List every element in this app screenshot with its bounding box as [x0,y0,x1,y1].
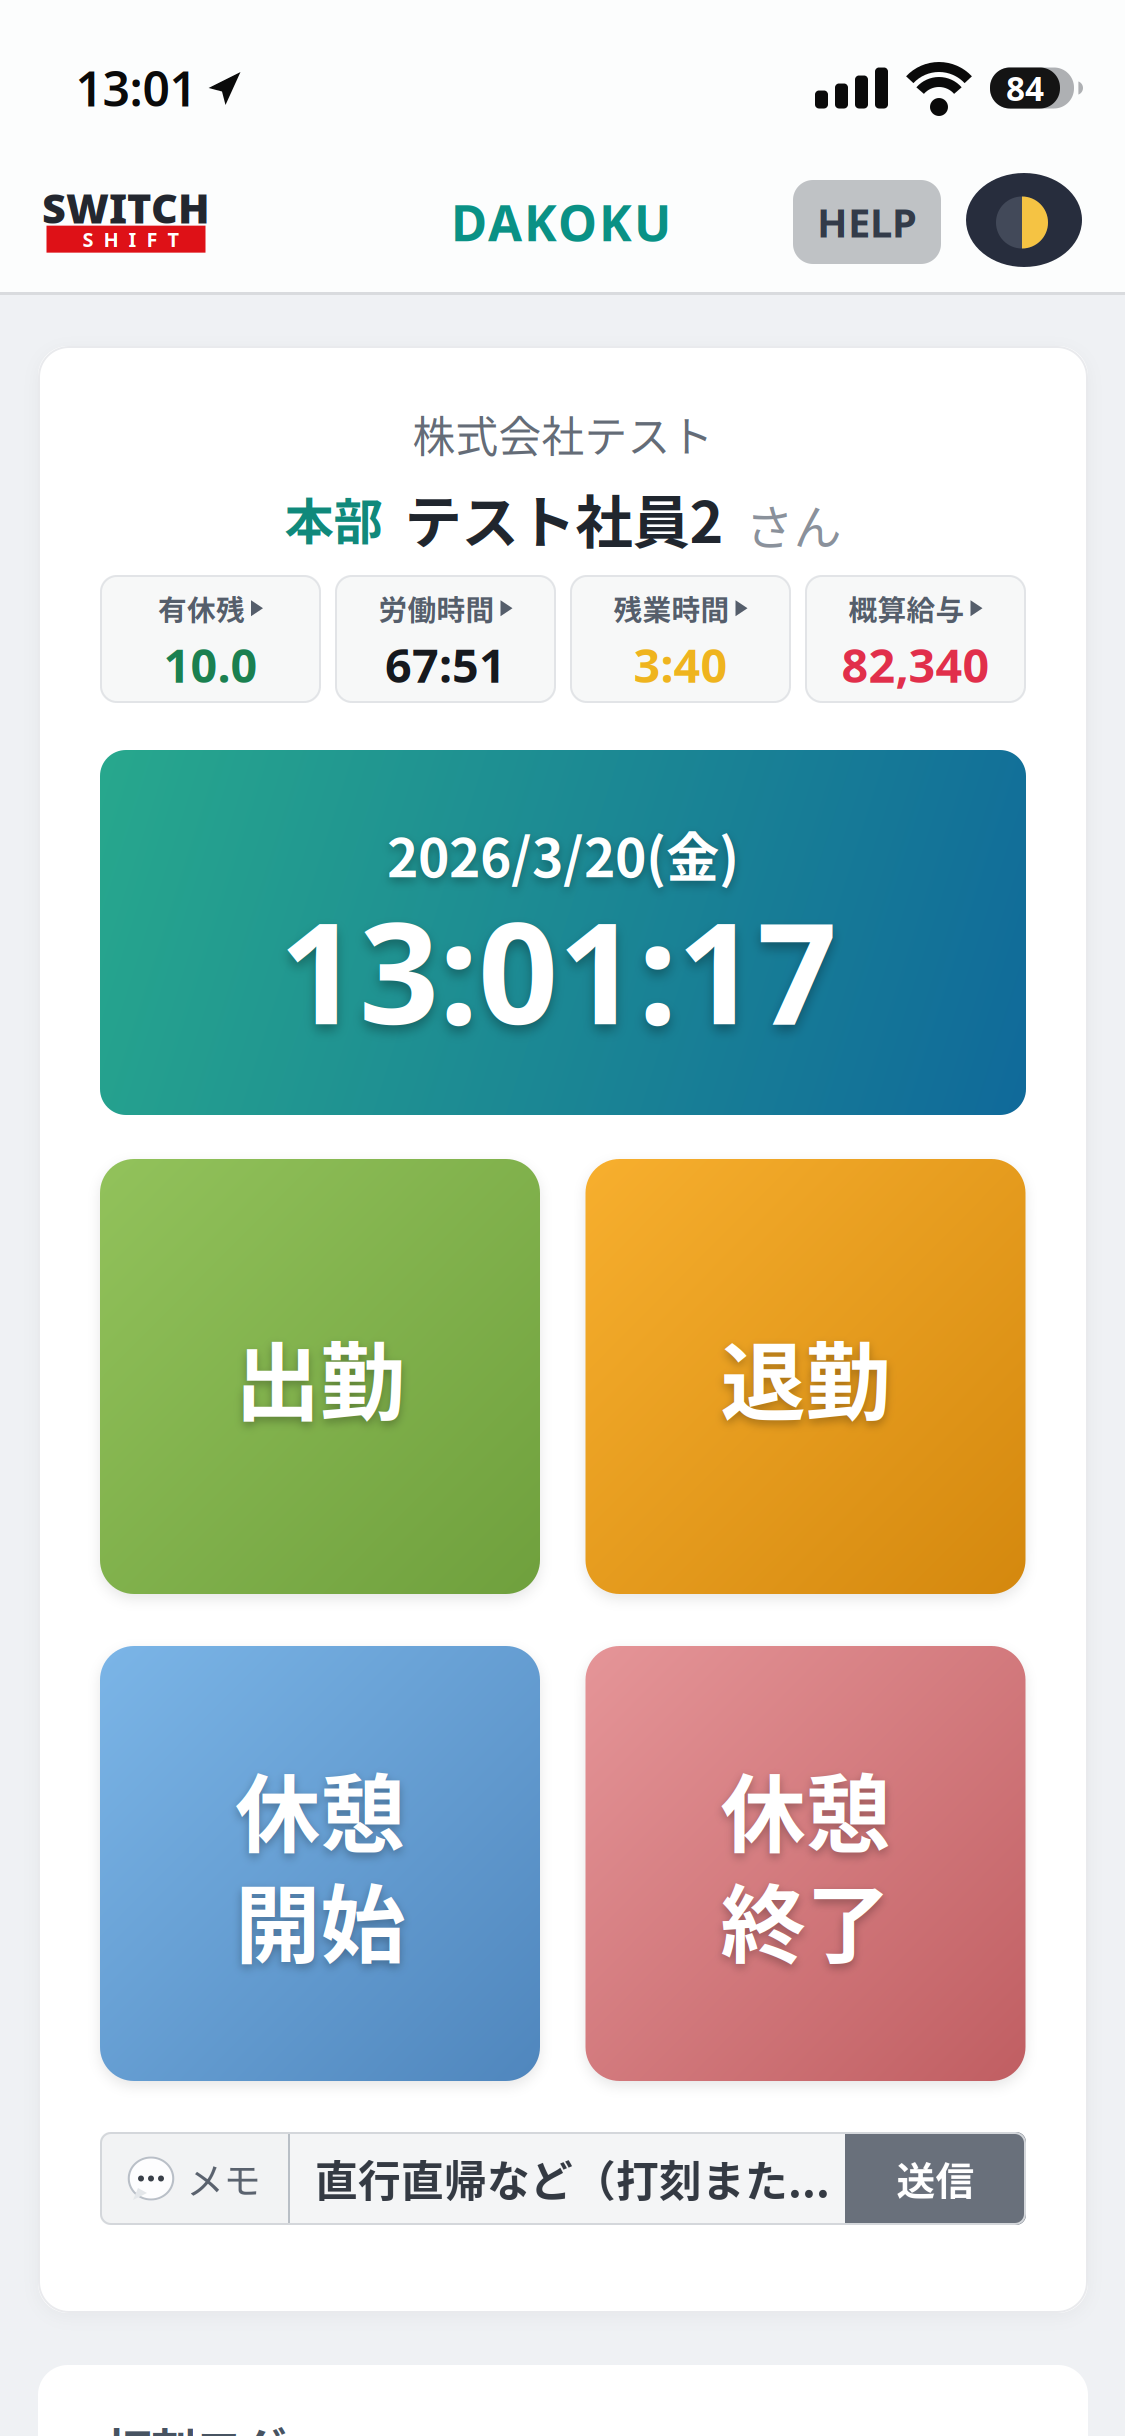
button[interactable]: 休憩 [100,1646,540,2081]
staticText: 株式会社テスト [412,403,713,465]
button[interactable]: 送信 [845,2132,1026,2225]
button[interactable]: 概算給与 [805,575,1026,703]
staticText: 直行直帰など（打刻また... [315,2148,830,2209]
button[interactable]: 有休残 [100,575,321,703]
staticText: 本部 [284,482,382,554]
staticText: メモ [186,2151,260,2206]
staticText: 出勤 [235,1315,405,1438]
button[interactable]: 出勤 [100,1159,540,1594]
staticText: SHIFT [82,225,179,253]
staticText: 労働時間 [378,587,494,629]
staticText: 13:01:17 [279,875,837,1065]
staticText: 終了 [720,1857,890,1981]
staticText: 残業時間 [613,587,729,629]
staticText: 84 [1006,65,1044,111]
button[interactable]: HELP [793,180,941,264]
staticText: 休憩 [235,1746,405,1870]
staticText: 有休残 [158,587,245,629]
staticText: テスト社員2 [404,476,723,559]
button[interactable]: 退勤 [585,1159,1025,1594]
button[interactable]: 残業時間 [570,575,791,703]
staticText: 82,340 [841,633,989,697]
staticText: 概算給与 [848,587,964,629]
staticText: 休憩 [720,1746,890,1870]
staticText: 開始 [235,1857,405,1981]
staticText: DAKOKU [451,188,671,256]
staticText: 退勤 [720,1315,890,1438]
staticText: 送信 [896,2150,974,2206]
staticText: 10.0 [163,633,257,697]
button[interactable]: メモ入力 [290,2132,845,2225]
button[interactable]: 休憩 [585,1646,1025,2081]
button[interactable]: Account [966,173,1082,267]
staticText: 打刻ログ [106,2414,286,2436]
staticText: 67:51 [385,633,506,697]
staticText: HELP [817,195,917,249]
staticText: 13:01 [75,56,196,120]
staticText: SWITCH [42,179,210,235]
staticText: 2026/3/20(金) [387,815,739,893]
button[interactable]: 労働時間 [335,575,556,703]
staticText: 3:40 [633,633,727,697]
staticText: さん [745,489,841,559]
